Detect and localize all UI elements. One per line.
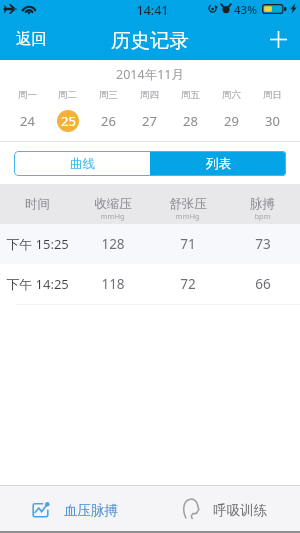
staticText: 周四 [140, 89, 159, 101]
staticText: 128 [101, 235, 125, 253]
staticText: 43% [234, 2, 257, 16]
button[interactable]: 下午 14:25 [0, 264, 300, 304]
staticText: bpm [254, 211, 271, 221]
staticText: 周二 [58, 89, 77, 101]
button[interactable]: 曲线 [14, 151, 150, 176]
staticText: 25 [61, 112, 76, 130]
staticText: 28 [183, 112, 198, 130]
staticText: mmHg [175, 211, 200, 221]
button[interactable]: Add record [257, 20, 300, 59]
staticText: 周三 [99, 89, 118, 101]
staticText: 血压脉搏 [64, 502, 118, 519]
button[interactable]: 30 [252, 106, 293, 135]
staticText: 26 [101, 112, 116, 130]
staticText: 舒张压 [169, 196, 207, 212]
staticText: 72 [180, 275, 196, 293]
staticText: mmHg [100, 211, 125, 221]
staticText: 周五 [181, 89, 200, 101]
staticText: 下午 14:25 [6, 275, 69, 293]
staticText: 27 [142, 112, 157, 130]
staticText: 周日 [263, 89, 282, 101]
staticText: 下午 15:25 [6, 235, 69, 253]
staticText: 24 [20, 112, 35, 130]
button[interactable]: 24 [7, 106, 47, 135]
staticText: 呼吸训练 [213, 502, 267, 519]
staticText: 历史记录 [111, 28, 189, 53]
staticText: 列表 [206, 156, 231, 172]
staticText: 66 [255, 275, 271, 293]
staticText: 周六 [222, 89, 241, 101]
staticText: 30 [265, 112, 280, 130]
staticText: 2014年11月 [116, 66, 184, 83]
button[interactable]: 25 [47, 106, 88, 135]
staticText: 71 [180, 235, 196, 253]
staticText: 时间 [25, 196, 50, 212]
staticText: 14:41 [136, 2, 169, 16]
button[interactable]: 26 [88, 106, 129, 135]
button[interactable]: 27 [129, 106, 170, 135]
button[interactable]: 列表 [150, 151, 286, 176]
staticText: 73 [255, 235, 271, 253]
staticText: 曲线 [70, 156, 95, 172]
button[interactable]: 血压脉搏 [0, 486, 150, 531]
staticText: 脉搏 [250, 196, 275, 212]
staticText: 收缩压 [94, 196, 132, 212]
staticText: 29 [224, 112, 239, 130]
staticText: 周一 [18, 89, 37, 101]
button[interactable]: 29 [211, 106, 252, 135]
staticText: 118 [101, 275, 125, 293]
button[interactable]: 28 [170, 106, 211, 135]
button[interactable]: 下午 15:25 [0, 224, 300, 264]
button[interactable]: 返回 [0, 18, 61, 60]
button[interactable]: 呼吸训练 [150, 486, 300, 531]
